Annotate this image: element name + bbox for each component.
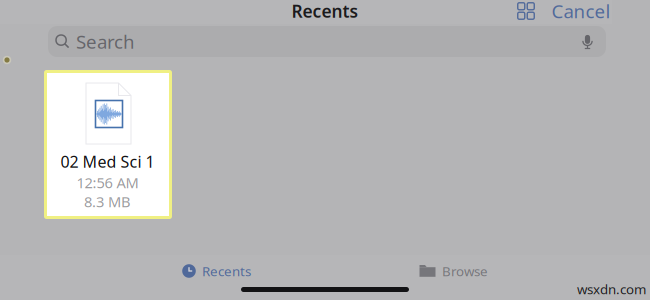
- staticText: 12:56 AM: [76, 173, 138, 192]
- staticText: Cancel: [551, 0, 610, 23]
- staticText: Browse: [442, 262, 488, 280]
- staticText: Recents: [291, 0, 358, 22]
- staticText: Search: [76, 29, 135, 54]
- button[interactable]: Cancel: [549, 0, 613, 22]
- staticText: Recents: [202, 262, 251, 280]
- staticText: 02 Med Sci 1: [60, 151, 154, 172]
- staticText: 8.3 MB: [84, 192, 131, 211]
- button[interactable]: Recents: [174, 259, 259, 283]
- staticText: wsxdn.com: [577, 280, 646, 298]
- button[interactable]: Grid view: [512, 0, 540, 22]
- button[interactable]: 02 Med Sci 1: [45, 71, 170, 217]
- button[interactable]: Search: [48, 26, 606, 57]
- button[interactable]: Browse: [411, 259, 496, 283]
